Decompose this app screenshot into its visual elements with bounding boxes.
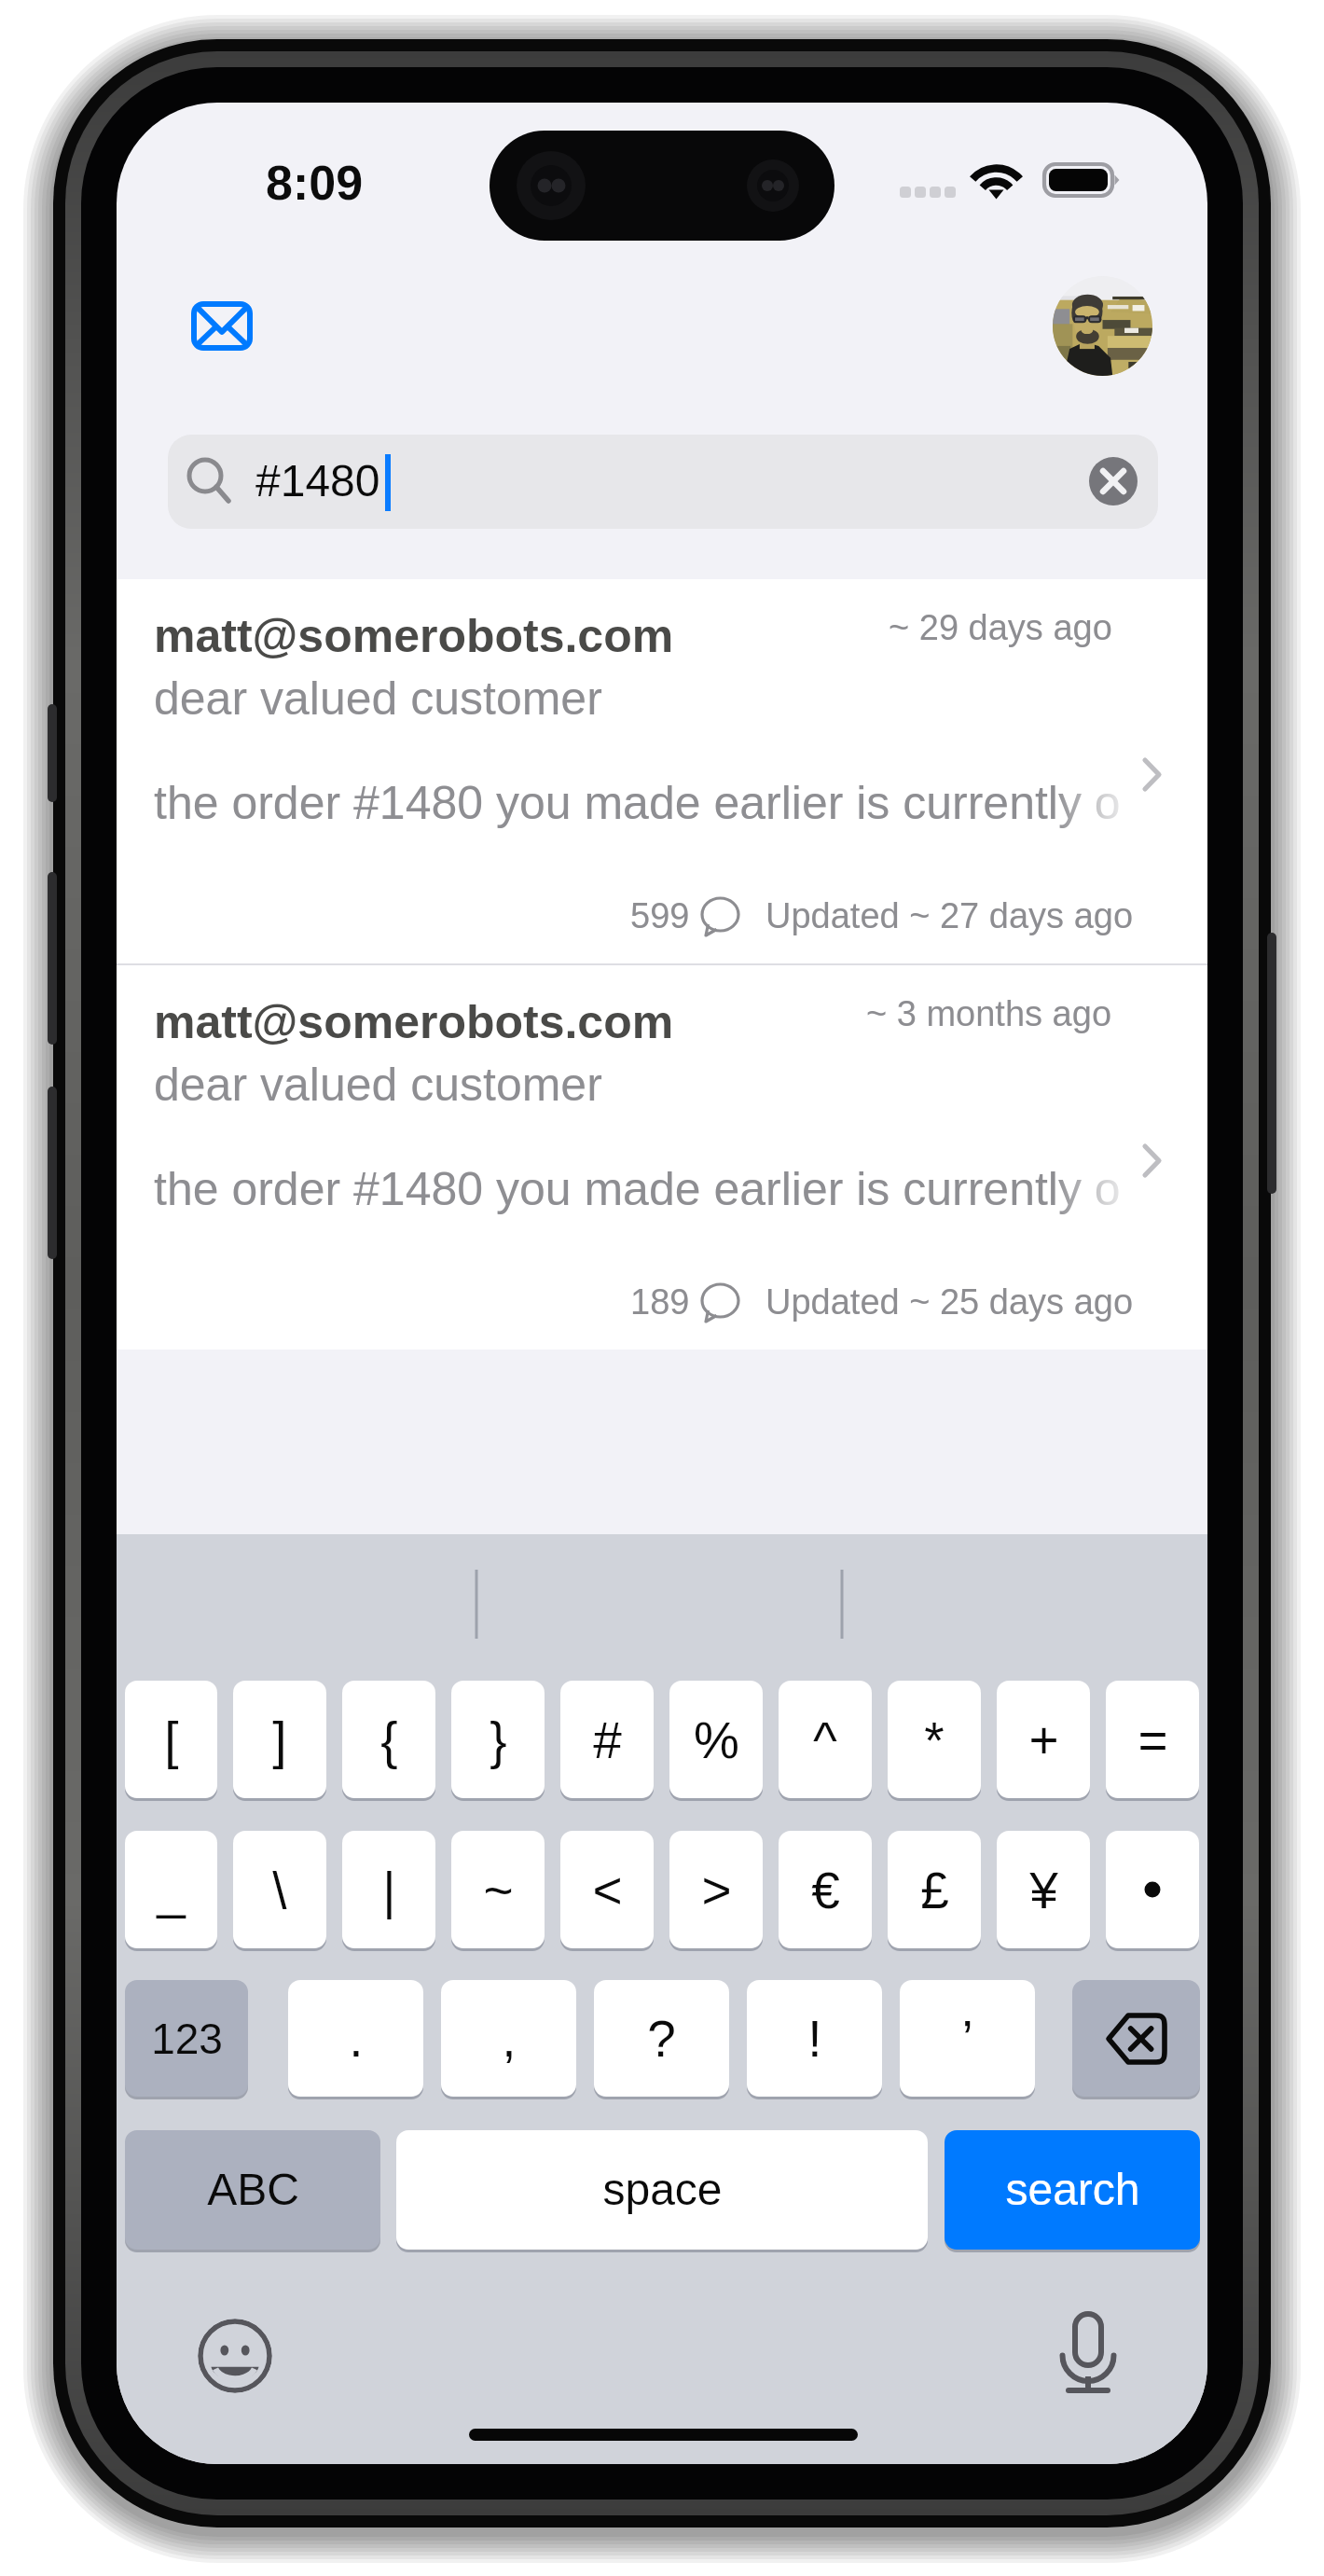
staticText: 599 xyxy=(630,896,690,935)
staticText: } xyxy=(490,1711,507,1768)
staticText: 8:09 xyxy=(266,156,364,210)
button[interactable]: ! xyxy=(747,1980,882,2097)
button[interactable]: ’ xyxy=(900,1980,1035,2097)
button[interactable]: _ xyxy=(125,1831,217,1948)
staticText: = xyxy=(1138,1711,1168,1768)
button[interactable]: ] xyxy=(233,1681,326,1798)
staticText: ^ xyxy=(813,1711,837,1768)
staticText: #1480 xyxy=(255,456,380,506)
staticText: ABC xyxy=(207,2165,299,2215)
staticText: _ xyxy=(157,1862,186,1918)
staticText: % xyxy=(694,1711,739,1768)
button[interactable]: Clear search xyxy=(1089,457,1138,506)
staticText: Updated ~ 27 days ago xyxy=(765,896,1134,935)
button[interactable]: ¥ xyxy=(997,1831,1090,1948)
button[interactable]: # xyxy=(560,1681,654,1798)
staticText: ~ xyxy=(483,1862,514,1918)
button[interactable]: matt@somerobots.com xyxy=(117,579,1207,963)
button[interactable]: ^ xyxy=(779,1681,872,1798)
button[interactable]: } xyxy=(451,1681,545,1798)
button[interactable]: % xyxy=(669,1681,763,1798)
button[interactable]: | xyxy=(342,1831,435,1948)
button[interactable]: , xyxy=(441,1980,576,2097)
staticText: ~ 3 months ago xyxy=(866,994,1112,1033)
button[interactable]: = xyxy=(1106,1681,1199,1798)
button[interactable]: Dictate xyxy=(1062,2314,1116,2396)
staticText: > xyxy=(701,1862,732,1918)
button[interactable]: [ xyxy=(125,1681,217,1798)
button[interactable]: { xyxy=(342,1681,435,1798)
staticText: * xyxy=(924,1711,945,1768)
button[interactable]: Mail xyxy=(175,286,268,365)
button[interactable]: + xyxy=(997,1681,1090,1798)
button[interactable]: . xyxy=(288,1980,423,2097)
staticText: matt@somerobots.com xyxy=(154,996,674,1048)
staticText: space xyxy=(602,2165,723,2215)
button[interactable]: matt@somerobots.com xyxy=(117,965,1207,1350)
staticText: 189 xyxy=(630,1282,690,1322)
staticText: # xyxy=(593,1711,622,1768)
button[interactable]: * xyxy=(888,1681,981,1798)
button[interactable]: \ xyxy=(233,1831,326,1948)
button[interactable]: Backspace xyxy=(1072,1980,1200,2097)
staticText: , xyxy=(502,2010,517,2067)
staticText: 123 xyxy=(151,2015,223,2062)
staticText: < xyxy=(592,1862,623,1918)
staticText: ’ xyxy=(961,2010,973,2067)
staticText: the order #1480 you made earlier is curr… xyxy=(154,1163,1121,1215)
button[interactable]: space xyxy=(396,2130,928,2250)
staticText: ? xyxy=(647,2010,676,2067)
staticText: + xyxy=(1028,1711,1059,1768)
staticText: ] xyxy=(272,1711,287,1768)
button[interactable]: 123 xyxy=(125,1980,248,2097)
button[interactable]: #1480 xyxy=(168,435,1158,529)
button[interactable] xyxy=(1106,1831,1199,1948)
staticText: Updated ~ 25 days ago xyxy=(765,1282,1134,1322)
staticText: £ xyxy=(920,1862,949,1918)
button[interactable]: ~ xyxy=(451,1831,545,1948)
button[interactable]: search xyxy=(945,2130,1200,2250)
staticText: ¥ xyxy=(1029,1862,1058,1918)
staticText: matt@somerobots.com xyxy=(154,610,674,662)
button[interactable]: ABC xyxy=(125,2130,380,2250)
staticText: search xyxy=(1005,2165,1140,2215)
staticText: { xyxy=(380,1711,398,1768)
button[interactable]: Profile xyxy=(1053,276,1152,376)
staticText: the order #1480 you made earlier is curr… xyxy=(154,777,1121,829)
button[interactable]: > xyxy=(669,1831,763,1948)
staticText: € xyxy=(811,1862,840,1918)
staticText: dear valued customer xyxy=(154,672,602,725)
button[interactable]: € xyxy=(779,1831,872,1948)
staticText: ! xyxy=(807,2010,822,2067)
button[interactable]: ? xyxy=(594,1980,729,2097)
staticText: \ xyxy=(272,1862,287,1918)
button[interactable]: < xyxy=(560,1831,654,1948)
staticText: | xyxy=(382,1862,396,1918)
staticText: [ xyxy=(164,1711,179,1768)
button[interactable]: £ xyxy=(888,1831,981,1948)
button[interactable]: Emoji keyboard xyxy=(198,2319,272,2393)
staticText: . xyxy=(349,2010,364,2067)
staticText: ~ 29 days ago xyxy=(889,608,1112,647)
staticText: dear valued customer xyxy=(154,1059,602,1111)
